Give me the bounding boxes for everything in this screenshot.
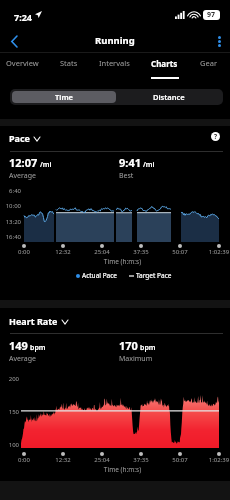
staticText: /mi (143, 160, 155, 170)
staticText: 25:04 (82, 248, 122, 256)
staticText: Heart Rate (9, 315, 58, 327)
staticText: Pace (9, 132, 30, 144)
button[interactable]: Distance (116, 91, 221, 103)
button[interactable]: Intervals (99, 53, 130, 63)
button[interactable]: Heart Rate (8, 315, 69, 327)
staticText: Stats (60, 58, 78, 68)
staticText: 6:40 (0, 187, 21, 195)
staticText: Distance (153, 92, 185, 102)
staticText: 12:32 (43, 248, 83, 256)
button[interactable]: Stats (60, 53, 78, 63)
staticText: 170 (119, 338, 138, 353)
staticText: Intervals (99, 58, 130, 68)
staticText: 1:02:39 (199, 456, 230, 464)
staticText: 9:41 (119, 155, 141, 170)
staticText: bpm (140, 343, 156, 353)
staticText: 50:07 (160, 248, 200, 256)
staticText: 200 (0, 375, 19, 383)
staticText: 0:00 (4, 248, 44, 256)
staticText: 37:35 (121, 456, 161, 464)
staticText: Average (9, 354, 36, 364)
staticText: Time (h:m:s) (102, 465, 143, 474)
button[interactable]: Pace (8, 132, 41, 144)
staticText: 7:24 (14, 11, 32, 23)
staticText: 149 (9, 338, 28, 353)
button[interactable]: Time (12, 91, 116, 103)
staticText: 25:04 (82, 456, 122, 464)
staticText: 1:02:39 (199, 248, 230, 256)
staticText: 12:32 (43, 456, 83, 464)
staticText: Maximum (119, 354, 153, 364)
staticText: Average (9, 171, 36, 181)
staticText: Actual Pace (82, 271, 118, 280)
staticText: Running (95, 34, 135, 47)
staticText: ? (214, 132, 218, 141)
staticText: Target Pace (136, 271, 172, 280)
staticText: Time (55, 92, 73, 102)
staticText: /mi (40, 160, 52, 170)
button[interactable]: Gear (200, 53, 217, 63)
staticText: 37:35 (121, 248, 161, 256)
button[interactable]: Info (208, 129, 223, 144)
staticText: 16:40 (0, 233, 21, 241)
button[interactable]: More options (208, 30, 230, 52)
staticText: Charts (151, 58, 178, 69)
staticText: 10:00 (0, 202, 21, 210)
staticText: 0:00 (4, 456, 44, 464)
staticText: 50:07 (160, 456, 200, 464)
staticText: Time (h:m:s) (102, 257, 143, 266)
staticText: 100 (0, 441, 19, 449)
button[interactable]: Back (3, 30, 25, 52)
staticText: Gear (200, 58, 217, 68)
staticText: 13:20 (0, 218, 21, 226)
staticText: Overview (6, 58, 39, 68)
staticText: 12:07 (9, 155, 38, 170)
staticText: bpm (30, 343, 46, 353)
staticText: 97 (207, 10, 216, 20)
staticText: Best (119, 171, 134, 181)
button[interactable]: Overview (6, 53, 39, 63)
button[interactable]: Charts (151, 53, 179, 64)
staticText: 150 (0, 408, 19, 416)
